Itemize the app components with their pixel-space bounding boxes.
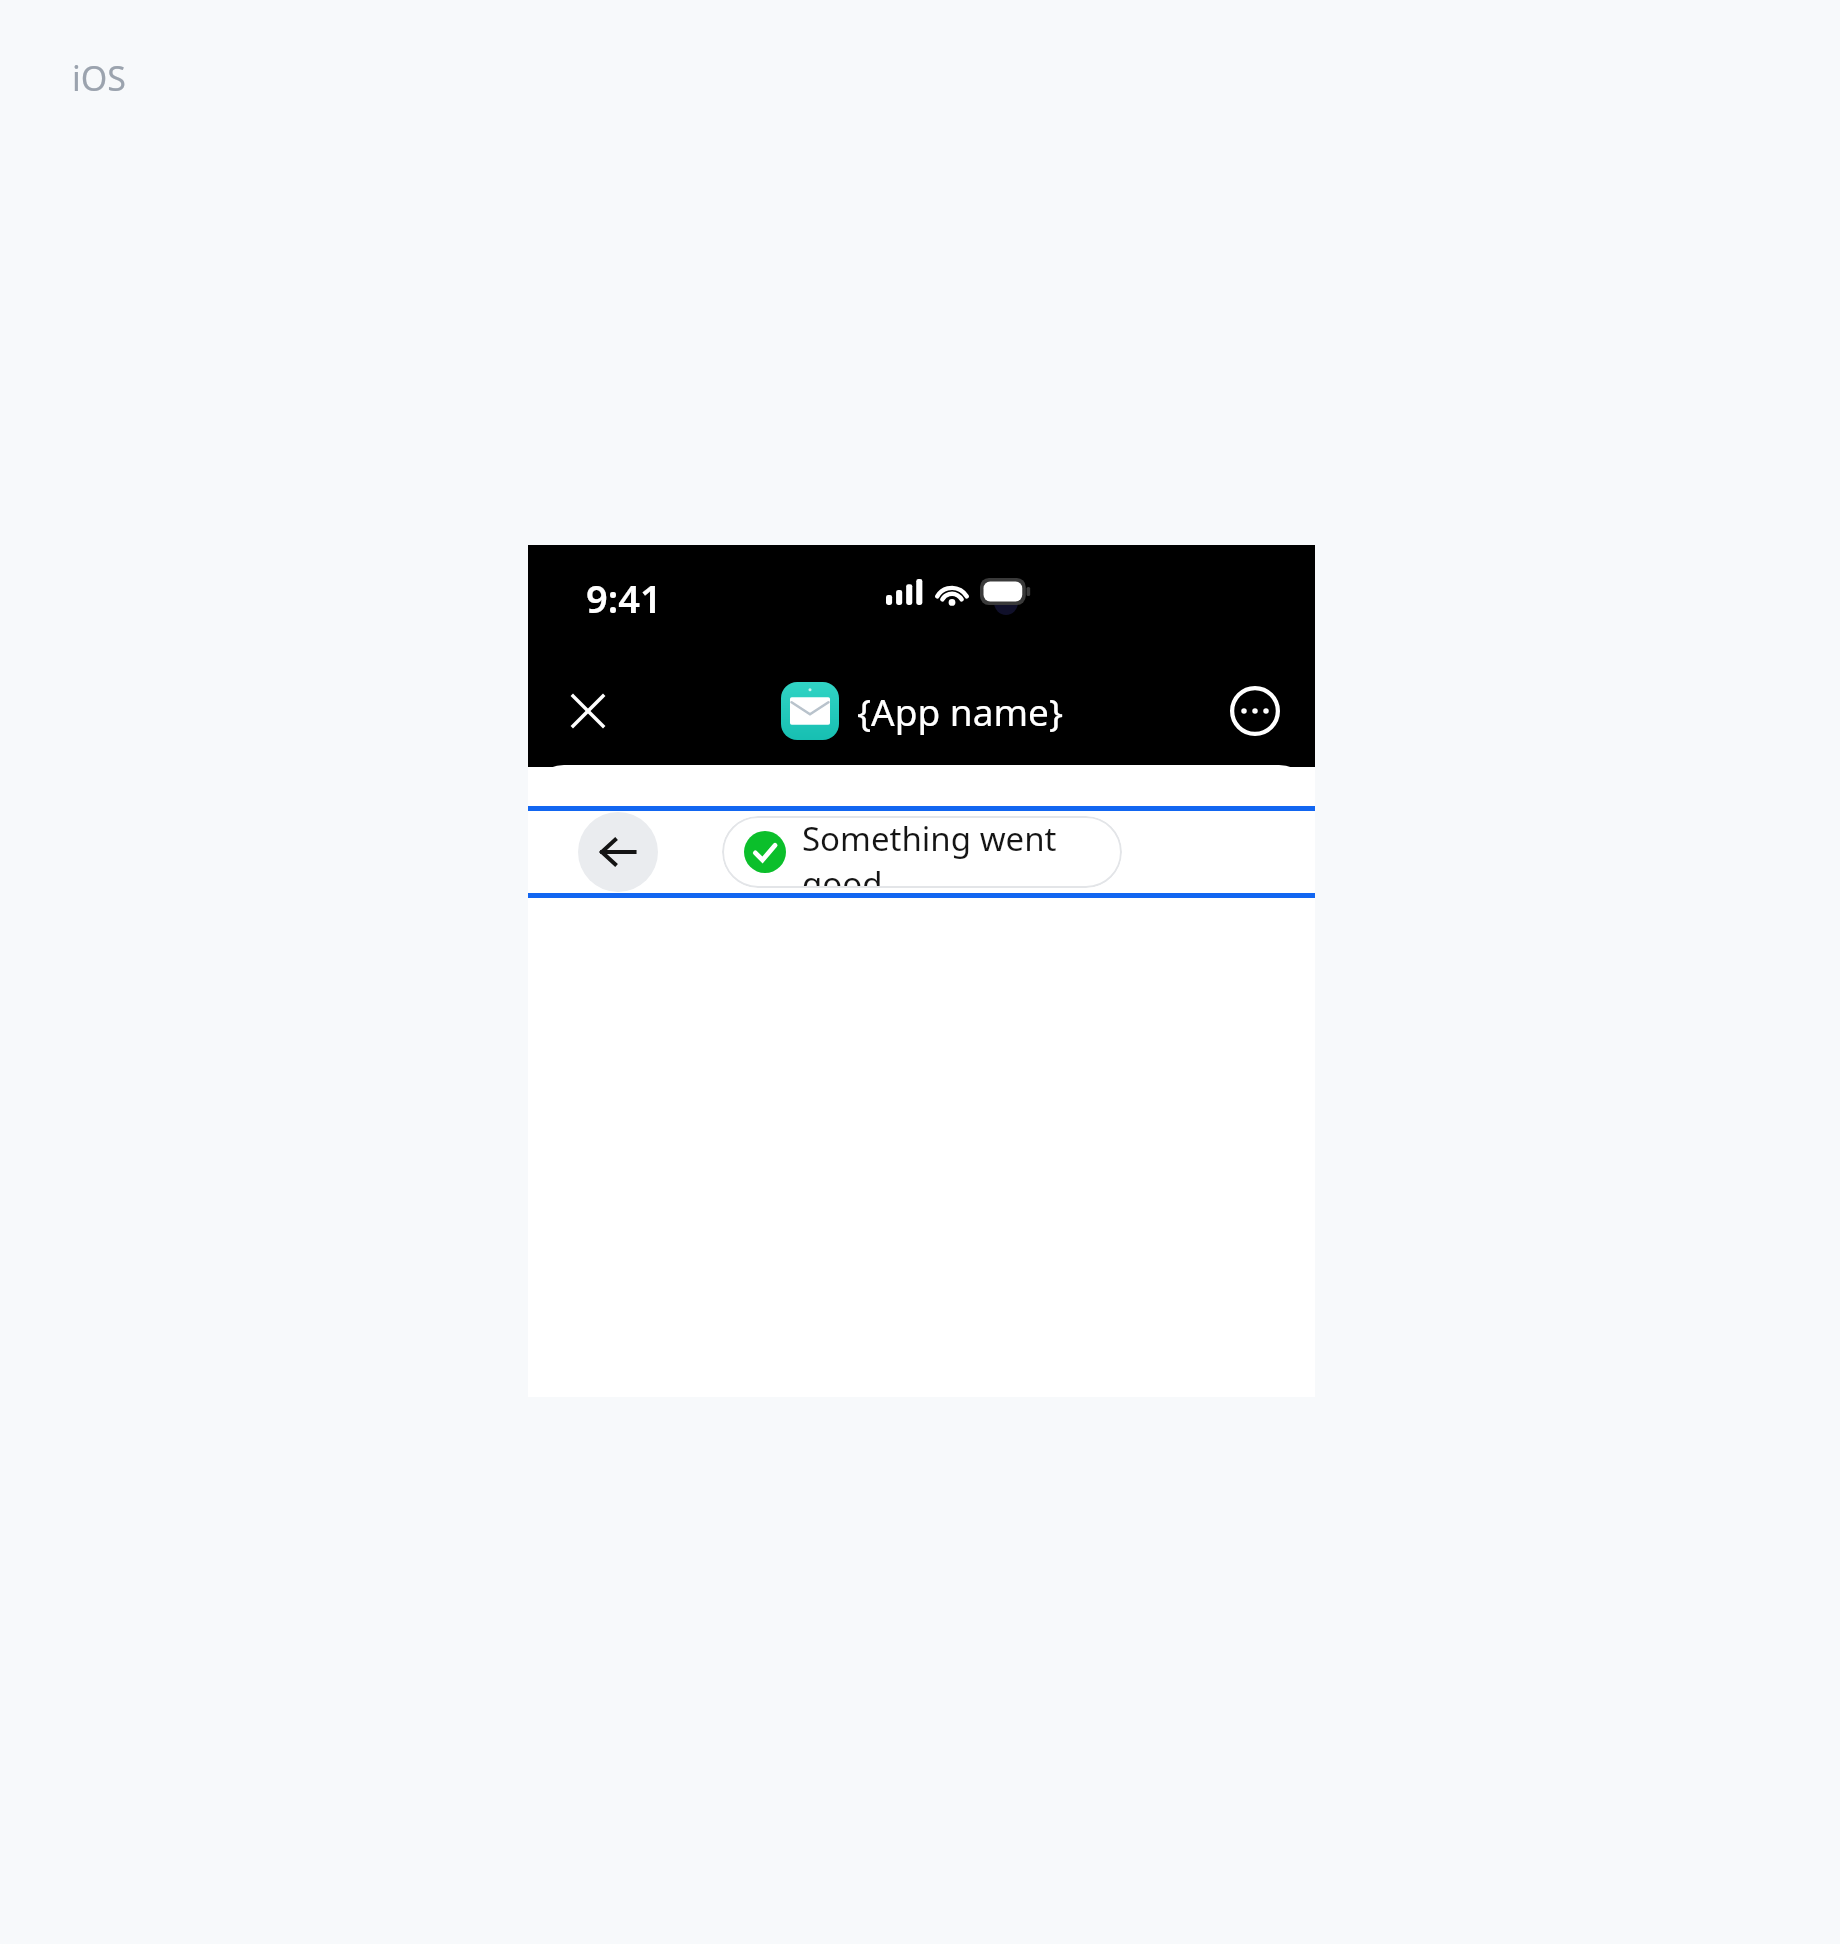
button[interactable]: Close	[556, 679, 620, 743]
button[interactable]: {App name}	[777, 678, 1067, 744]
staticText: Something went good	[802, 816, 1100, 888]
staticText: {App name}	[857, 686, 1063, 736]
button[interactable]: Back	[578, 812, 658, 892]
staticText: iOS	[72, 55, 126, 101]
button[interactable]: More options	[1221, 677, 1289, 745]
staticText: 9:41	[586, 572, 662, 624]
button[interactable]: Something went good	[722, 816, 1122, 888]
